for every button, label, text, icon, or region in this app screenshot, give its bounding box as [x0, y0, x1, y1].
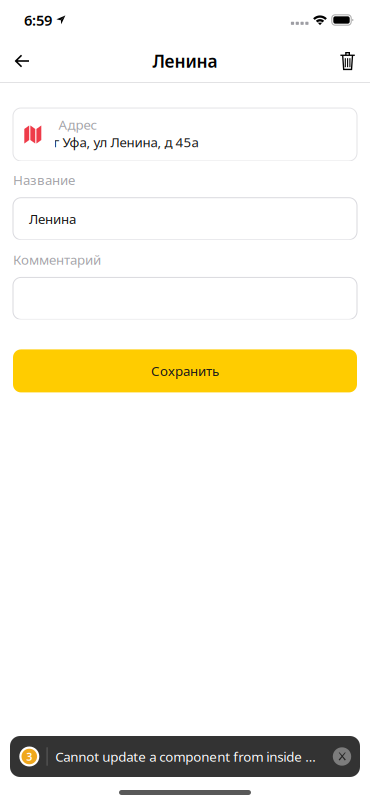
button[interactable]: Back — [0, 40, 44, 82]
button[interactable]: Dismiss — [328, 741, 356, 771]
staticText: Сохранить — [151, 362, 219, 380]
staticText: Cannot update a component from inside th… — [55, 748, 320, 765]
staticText: Комментарий — [13, 251, 101, 268]
button[interactable]: Адрес — [13, 108, 357, 161]
staticText: 3 — [26, 749, 32, 764]
staticText: Адрес — [59, 116, 98, 133]
staticText: Ленина — [29, 210, 76, 228]
staticText: г Уфа, ул Ленина, д 45а — [54, 133, 199, 151]
button[interactable]: Сохранить — [13, 349, 357, 392]
staticText: Название — [13, 171, 75, 189]
staticText: 6:59 — [24, 10, 52, 30]
staticText: Ленина — [152, 49, 217, 72]
button[interactable]: Delete — [326, 40, 370, 82]
